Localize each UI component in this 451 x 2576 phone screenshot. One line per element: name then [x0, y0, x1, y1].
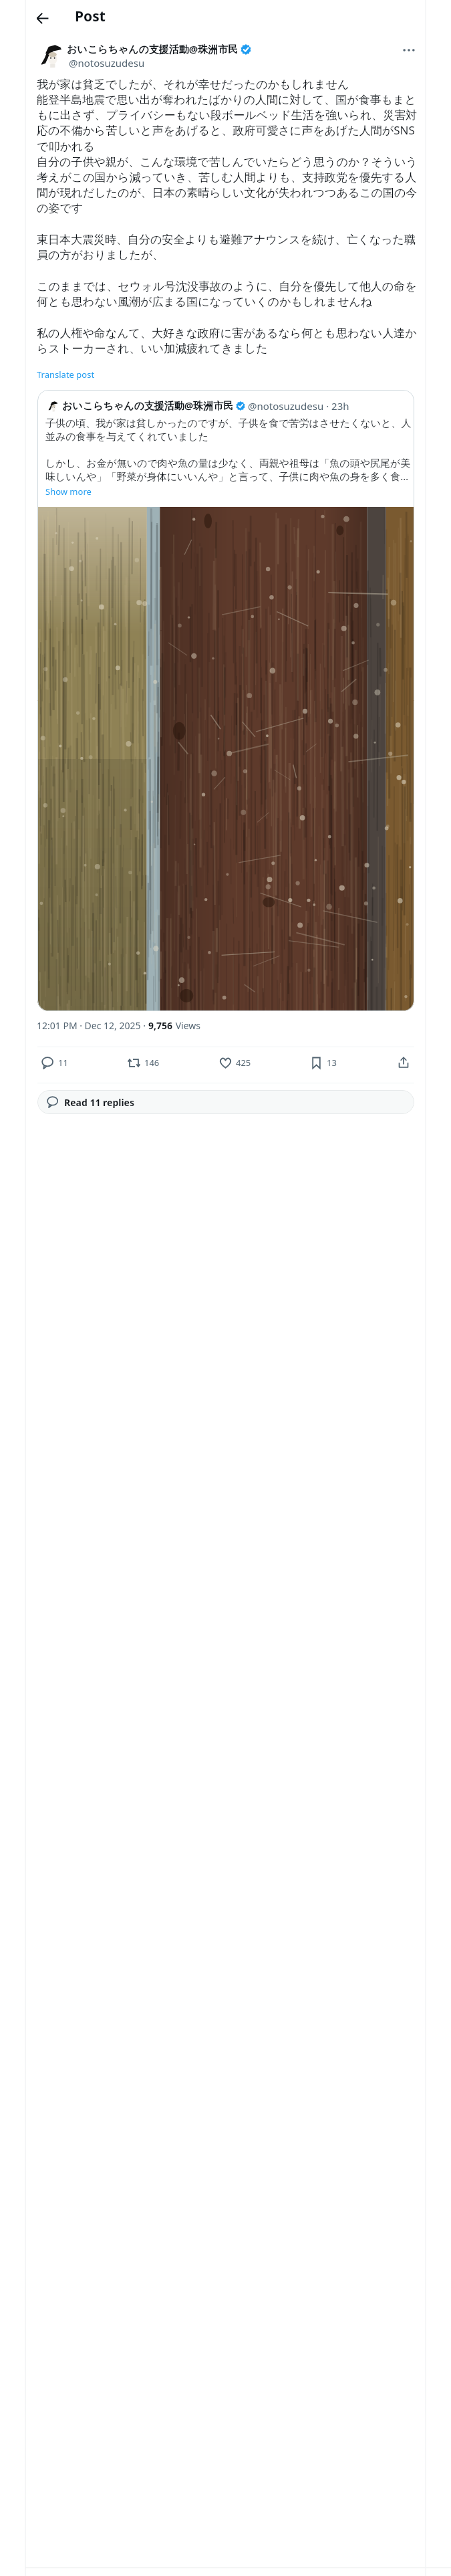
- staticText: 11: [58, 1057, 68, 1069]
- staticText: 13: [327, 1057, 337, 1069]
- button[interactable]: Show more: [45, 486, 92, 498]
- button[interactable]: 11: [35, 1050, 75, 1075]
- staticText: 我が家は貧乏でしたが、それが幸せだったのかもしれません 能登半島地震で思い出が奪…: [37, 76, 424, 356]
- button[interactable]: Back: [30, 6, 54, 30]
- button[interactable]: Share: [391, 1050, 416, 1075]
- button[interactable]: おいこらちゃんの支援活動@珠洲市民: [37, 390, 414, 1011]
- staticText: おいこらちゃんの支援活動@珠洲市民: [62, 399, 234, 413]
- staticText: @notosuzudesu: [69, 56, 145, 70]
- button[interactable]: Read 11 replies: [37, 1090, 414, 1114]
- staticText: 146: [144, 1057, 160, 1069]
- button[interactable]: 146: [121, 1050, 166, 1075]
- staticText: Post: [75, 10, 106, 25]
- staticText: Read 11 replies: [64, 1096, 134, 1109]
- button[interactable]: 13: [303, 1050, 343, 1075]
- staticText: 子供の頃、我が家は貧しかったのですが、子供を食で苦労はさせたくないと、人並みの食…: [45, 417, 413, 484]
- staticText: Views: [173, 1019, 200, 1032]
- button[interactable]: Translate post: [37, 368, 95, 381]
- staticText: Show more: [45, 486, 92, 498]
- staticText: おいこらちゃんの支援活動@珠洲市民: [67, 42, 239, 56]
- button[interactable]: 425: [212, 1050, 258, 1075]
- staticText: 12:01 PM · Dec 12, 2025 ·: [37, 1019, 148, 1032]
- button[interactable]: More options: [397, 38, 421, 62]
- staticText: @notosuzudesu · 23h: [248, 399, 349, 413]
- staticText: 9,756: [148, 1019, 173, 1032]
- staticText: Translate post: [37, 368, 95, 381]
- staticText: 425: [236, 1057, 251, 1069]
